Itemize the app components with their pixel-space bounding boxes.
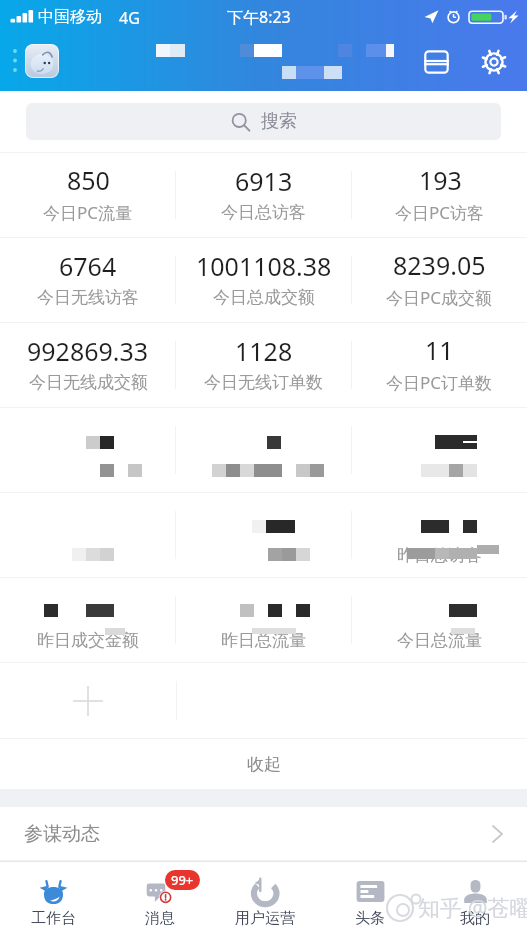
staticText: 下午8:23 [227, 6, 291, 28]
staticText: 1001108.38 [196, 249, 332, 283]
button[interactable]: 6913 [176, 153, 351, 237]
staticText: 6764 [59, 249, 117, 283]
staticText: 消息 [145, 909, 175, 928]
button[interactable] [0, 408, 175, 492]
button[interactable]: 193 [352, 153, 527, 237]
staticText: 1128 [235, 334, 293, 368]
button[interactable] [176, 493, 351, 577]
button[interactable] [176, 408, 351, 492]
button[interactable]: 头条 [317, 862, 422, 935]
button[interactable]: Settings [472, 40, 516, 84]
staticText: 6913 [235, 164, 293, 198]
staticText: 850 [67, 163, 110, 197]
button[interactable]: 992869.33 [0, 323, 175, 407]
button[interactable]: 昨日成交金额 [0, 578, 175, 662]
button[interactable]: 昨日总流量 [176, 578, 351, 662]
staticText: 今日无线订单数 [204, 372, 323, 393]
button[interactable]: 参谋动态 [0, 807, 527, 860]
button[interactable]: 我的 [422, 862, 527, 935]
staticText: 今日PC订单数 [386, 371, 493, 394]
staticText: 用户运营 [235, 909, 295, 928]
button[interactable]: 11 [352, 323, 527, 407]
staticText: 昨日总访客 [397, 545, 482, 566]
button[interactable]: 1128 [176, 323, 351, 407]
staticText: 收起 [247, 754, 281, 775]
staticText: 今日PC流量 [43, 201, 133, 224]
staticText: 我的 [460, 909, 490, 928]
staticText: 今日PC成交额 [386, 286, 493, 309]
button[interactable]: 今日总流量 [352, 578, 527, 662]
button[interactable] [352, 408, 527, 492]
staticText: 昨日成交金额 [37, 630, 139, 651]
staticText: 99+ [171, 871, 194, 889]
button[interactable]: 用户运营 [212, 862, 317, 935]
staticText: 工作台 [31, 909, 76, 928]
staticText: 今日无线成交额 [29, 372, 148, 393]
staticText: 昨日总流量 [221, 630, 306, 651]
button[interactable]: 昨日总访客 [352, 493, 527, 577]
staticText: 今日无线访客 [37, 287, 139, 308]
button[interactable]: Switch layout [414, 40, 458, 84]
button[interactable]: Shop avatar [25, 44, 59, 78]
staticText: 今日总访客 [221, 202, 306, 223]
staticText: 今日总成交额 [213, 287, 315, 308]
button[interactable]: 6764 [0, 238, 175, 322]
staticText: 992869.33 [27, 334, 149, 368]
button[interactable]: 8239.05 [352, 238, 527, 322]
staticText: 头条 [355, 909, 385, 928]
staticText: 4G [119, 7, 140, 29]
staticText: 参谋动态 [24, 822, 100, 846]
staticText: 今日总流量 [397, 630, 482, 651]
button[interactable]: More options [6, 43, 24, 77]
staticText: 今日PC访客 [395, 201, 485, 224]
button[interactable]: 99+ [106, 862, 212, 935]
staticText: 193 [419, 163, 462, 197]
staticText: 11 [425, 333, 454, 367]
staticText: 知乎 @苍曜 [418, 892, 527, 922]
button[interactable]: 工作台 [0, 862, 106, 935]
staticText: 中国移动 [38, 7, 102, 27]
button[interactable]: 收起 [0, 739, 527, 789]
button[interactable]: 850 [0, 153, 175, 237]
button[interactable] [0, 493, 175, 577]
staticText: 搜索 [261, 110, 297, 133]
staticText: 8239.05 [393, 248, 486, 282]
button[interactable]: 1001108.38 [176, 238, 351, 322]
button[interactable]: 搜索 [26, 103, 501, 140]
